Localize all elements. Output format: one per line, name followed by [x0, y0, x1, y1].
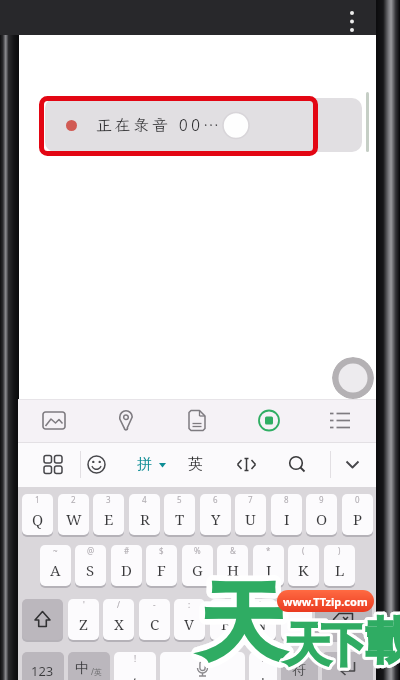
- button[interactable]: [322, 652, 373, 680]
- button[interactable]: 7: [235, 494, 266, 535]
- staticText: C: [150, 614, 160, 634]
- staticText: Q: [32, 509, 44, 529]
- staticText: (: [302, 545, 305, 556]
- staticText: 8: [284, 494, 289, 505]
- staticText: ?: [295, 599, 299, 610]
- button[interactable]: 中: [68, 652, 110, 680]
- staticText: L: [335, 560, 345, 580]
- staticText: 9: [319, 494, 324, 505]
- button[interactable]: [315, 599, 372, 640]
- button[interactable]: [283, 450, 312, 479]
- button[interactable]: [22, 599, 63, 640]
- staticText: S: [86, 560, 95, 580]
- button[interactable]: 9: [306, 494, 337, 535]
- staticText: 123: [31, 662, 54, 680]
- button[interactable]: [160, 652, 245, 680]
- staticText: 1: [35, 494, 40, 505]
- staticText: N: [255, 614, 267, 634]
- button[interactable]: [38, 449, 68, 480]
- button[interactable]: 4: [129, 494, 160, 535]
- staticText: www.TTzip.com: [283, 594, 368, 609]
- button[interactable]: 6: [200, 494, 231, 535]
- button[interactable]: ': [68, 599, 99, 640]
- button[interactable]: [253, 404, 285, 437]
- button[interactable]: [110, 404, 142, 437]
- button[interactable]: 英: [182, 450, 210, 479]
- button[interactable]: /: [103, 599, 134, 640]
- staticText: 5: [177, 494, 182, 505]
- button[interactable]: ): [324, 545, 355, 586]
- staticText: I: [284, 509, 290, 529]
- button[interactable]: (: [288, 545, 319, 586]
- button[interactable]: @: [75, 545, 106, 586]
- staticText: :: [188, 599, 191, 610]
- staticText: 拼: [137, 455, 152, 474]
- staticText: ~: [53, 545, 58, 556]
- button[interactable]: 123: [22, 652, 64, 680]
- staticText: H: [227, 560, 239, 580]
- button[interactable]: [338, 4, 368, 35]
- staticText: ?: [261, 653, 265, 664]
- staticText: E: [104, 509, 114, 529]
- button[interactable]: [82, 450, 111, 479]
- staticText: 下: [321, 616, 368, 675]
- staticText: -: [153, 599, 156, 610]
- button[interactable]: ;: [210, 599, 241, 640]
- button[interactable]: 5: [164, 494, 195, 535]
- staticText: .: [261, 665, 265, 680]
- button[interactable]: *: [253, 545, 284, 586]
- staticText: 0: [355, 494, 360, 505]
- staticText: ,: [133, 665, 137, 680]
- button[interactable]: :: [174, 599, 205, 640]
- staticText: ;: [224, 599, 227, 610]
- button[interactable]: 8: [271, 494, 302, 535]
- staticText: O: [316, 509, 328, 529]
- staticText: A: [50, 560, 61, 580]
- button[interactable]: [45, 98, 362, 152]
- staticText: 正在录音 00…: [96, 114, 222, 135]
- button[interactable]: !: [245, 599, 276, 640]
- button[interactable]: [324, 404, 356, 437]
- staticText: T: [175, 509, 185, 529]
- staticText: ': [83, 599, 85, 610]
- button[interactable]: 1: [22, 494, 53, 535]
- button[interactable]: 拼: [133, 450, 173, 479]
- button[interactable]: 3: [93, 494, 124, 535]
- staticText: 載: [365, 611, 400, 673]
- button[interactable]: www.TTzip.com: [277, 590, 374, 612]
- staticText: 符: [292, 661, 306, 679]
- button[interactable]: -: [139, 599, 170, 640]
- button[interactable]: %: [182, 545, 213, 586]
- staticText: R: [140, 509, 150, 529]
- button[interactable]: ~: [40, 545, 71, 586]
- staticText: 中: [75, 660, 89, 678]
- button[interactable]: 符: [281, 652, 318, 680]
- staticText: @: [87, 545, 95, 556]
- staticText: 天: [200, 570, 285, 677]
- staticText: F: [157, 560, 166, 580]
- staticText: 7: [248, 494, 253, 505]
- button[interactable]: &: [217, 545, 248, 586]
- staticText: 載: [365, 611, 400, 673]
- button[interactable]: #: [111, 545, 142, 586]
- button[interactable]: [332, 357, 374, 399]
- button[interactable]: ?: [281, 599, 312, 640]
- button[interactable]: $: [146, 545, 177, 586]
- staticText: #: [124, 545, 130, 556]
- button[interactable]: 2: [58, 494, 89, 535]
- staticText: G: [192, 560, 203, 580]
- button[interactable]: [181, 404, 213, 437]
- button[interactable]: 0: [342, 494, 373, 535]
- button[interactable]: [338, 450, 367, 479]
- staticText: /英: [91, 666, 102, 677]
- button[interactable]: ?: [249, 652, 277, 680]
- staticText: !: [134, 653, 137, 664]
- button[interactable]: [38, 404, 70, 437]
- staticText: X: [114, 614, 124, 634]
- staticText: 3: [106, 494, 111, 505]
- button[interactable]: [232, 450, 261, 479]
- staticText: *: [266, 545, 271, 556]
- button[interactable]: !: [114, 652, 156, 680]
- staticText: M: [289, 614, 304, 634]
- staticText: !: [259, 599, 262, 610]
